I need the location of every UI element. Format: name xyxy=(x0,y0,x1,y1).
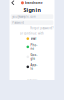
staticText: Google xyxy=(30,53,37,60)
staticText: Sign in xyxy=(23,6,40,13)
staticText: Email xyxy=(30,37,36,40)
staticText: or continue with xyxy=(20,32,44,35)
button[interactable]: Apple xyxy=(26,63,37,70)
button[interactable]: Forgot password? xyxy=(11,26,53,30)
staticText: Phone xyxy=(30,43,37,50)
staticText: Terms Privacy xyxy=(26,78,37,80)
staticText: Forgot password? xyxy=(30,26,53,30)
staticText: Password xyxy=(12,21,24,24)
button[interactable]: Back xyxy=(10,0,15,6)
staticText: brandname xyxy=(25,1,43,5)
staticText: Apple xyxy=(30,63,37,70)
button[interactable]: Google xyxy=(26,53,37,60)
button[interactable]: Phone xyxy=(26,43,37,50)
staticText: you@example.com xyxy=(12,15,35,18)
button[interactable]: Email xyxy=(26,37,37,40)
